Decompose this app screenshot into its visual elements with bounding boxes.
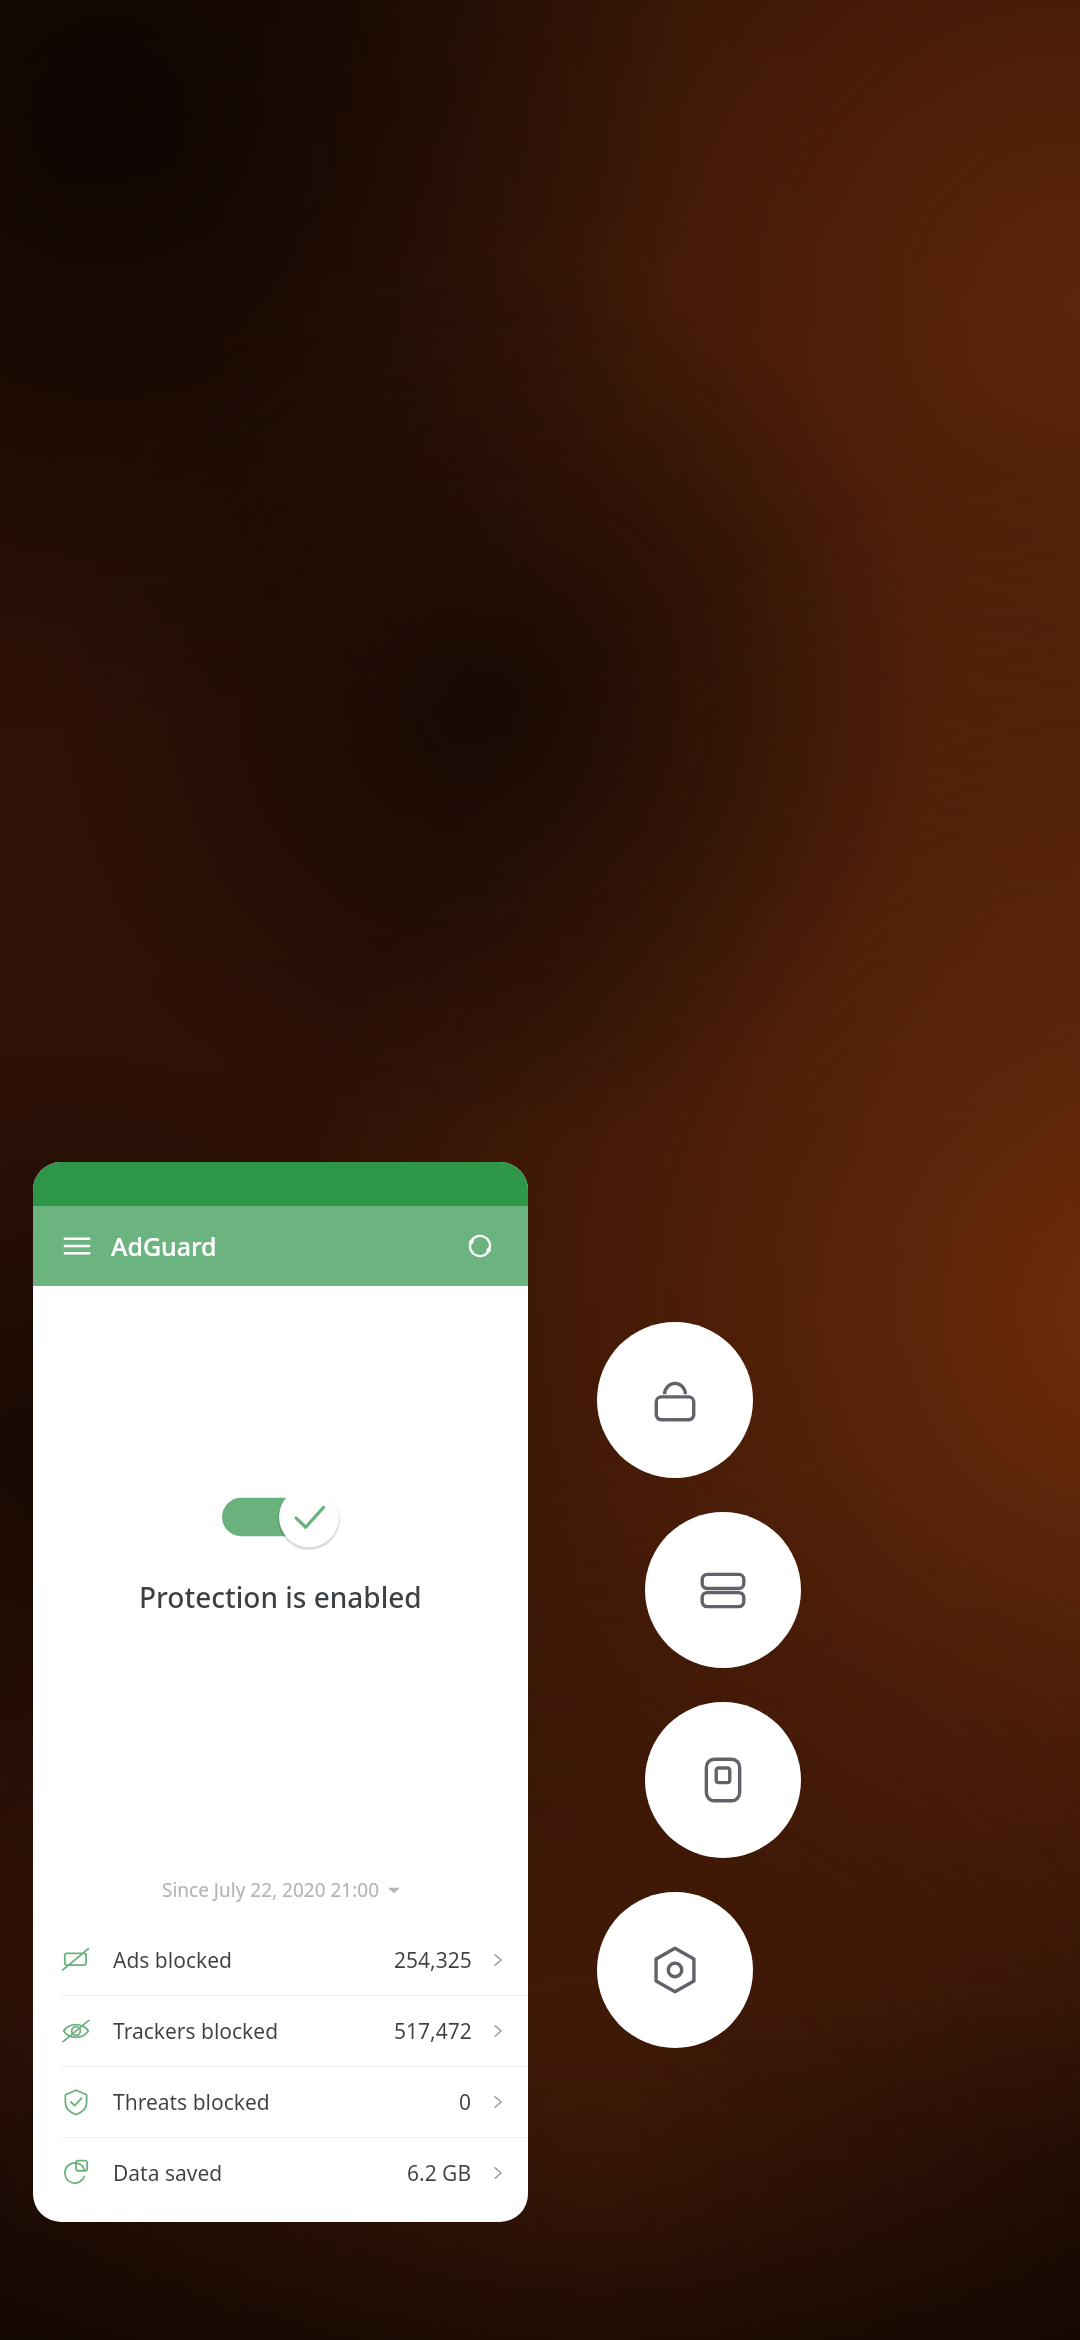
staticText: 517,472 <box>394 2017 472 2046</box>
staticText: Since July 22, 2020 21:00 <box>162 1877 380 1903</box>
button[interactable]: Ads blocked <box>33 1925 528 1995</box>
button[interactable]: Data saved <box>33 2138 528 2208</box>
staticText: Protection is enabled <box>139 1578 422 1616</box>
button[interactable]: Lock <box>597 1322 753 1478</box>
button[interactable]: Open navigation menu <box>55 1224 99 1268</box>
button[interactable]: Screen <box>645 1702 801 1858</box>
button[interactable]: Refresh <box>456 1222 504 1270</box>
button[interactable]: Threats blocked <box>33 2067 528 2137</box>
button[interactable]: Trackers blocked <box>33 1996 528 2066</box>
staticText: 6.2 GB <box>407 2159 472 2188</box>
staticText: Trackers blocked <box>113 2017 279 2046</box>
button[interactable]: Since July 22, 2020 21:00 <box>162 1877 400 1903</box>
button[interactable]: Settings <box>597 1892 753 2048</box>
staticText: 254,325 <box>394 1946 472 1975</box>
staticText: Data saved <box>113 2159 223 2188</box>
button[interactable]: Protection toggle, enabled <box>222 1486 340 1548</box>
staticText: AdGuard <box>111 1229 217 1263</box>
button[interactable]: Layout <box>645 1512 801 1668</box>
staticText: Ads blocked <box>113 1946 232 1975</box>
staticText: 0 <box>459 2088 472 2117</box>
staticText: Threats blocked <box>113 2088 270 2117</box>
